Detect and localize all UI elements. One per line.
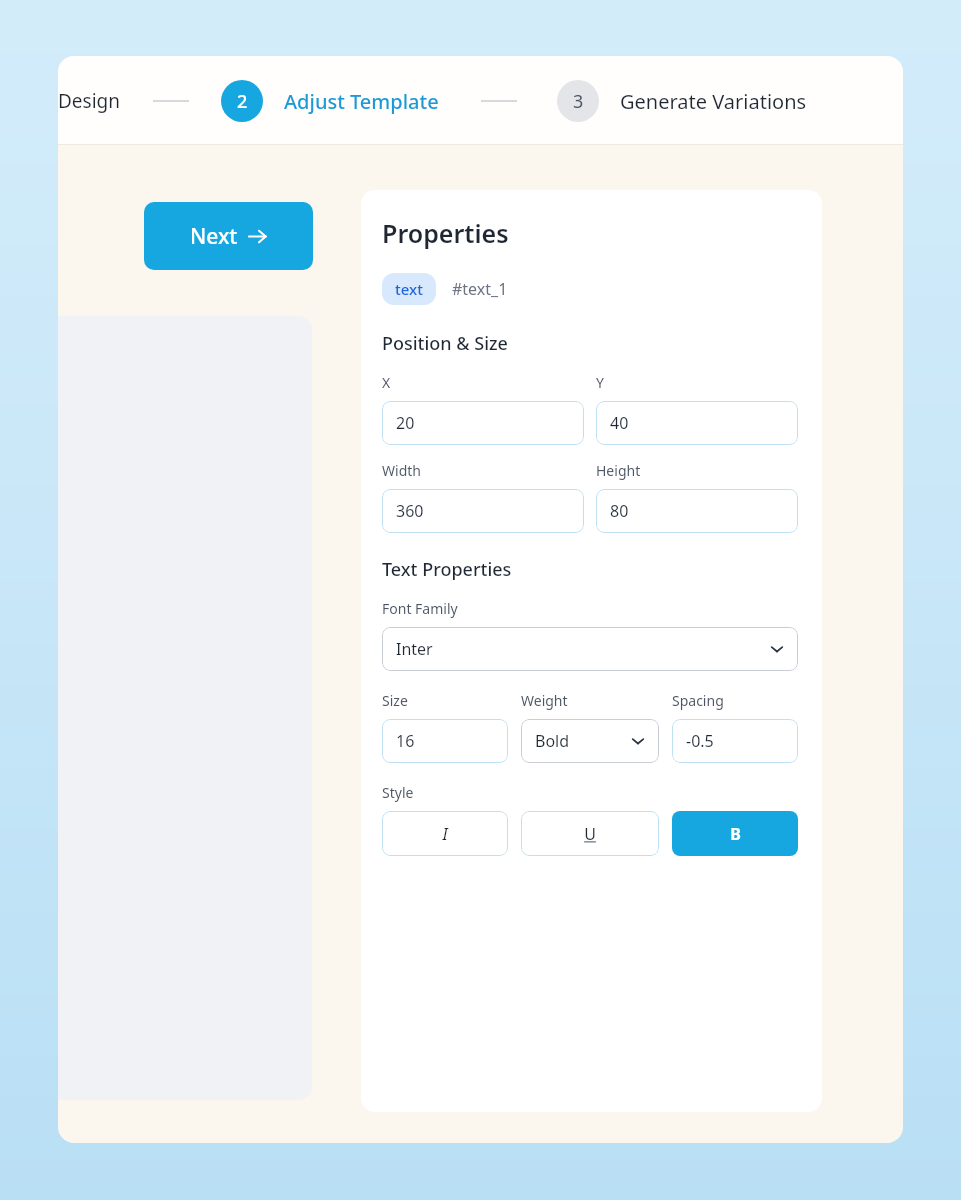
- staticText: Design: [58, 88, 121, 114]
- staticText: 40: [610, 412, 629, 434]
- staticText: Properties: [382, 216, 509, 250]
- staticText: #text_1: [452, 278, 508, 300]
- staticText: 3: [573, 89, 584, 114]
- staticText: Position & Size: [382, 331, 508, 356]
- staticText: 360: [396, 500, 424, 522]
- staticText: 80: [610, 500, 629, 522]
- staticText: Inter: [396, 638, 433, 660]
- button[interactable]: 2: [221, 80, 439, 122]
- staticText: Style: [382, 783, 414, 802]
- button[interactable]: -0.5: [672, 719, 798, 763]
- button[interactable]: 3: [557, 80, 807, 122]
- staticText: Generate Variations: [620, 88, 807, 115]
- staticText: Weight: [521, 691, 568, 710]
- button[interactable]: 80: [596, 489, 798, 533]
- button[interactable]: 16: [382, 719, 508, 763]
- staticText: Size: [382, 691, 408, 710]
- button[interactable]: 360: [382, 489, 584, 533]
- staticText: 2: [237, 89, 248, 114]
- button[interactable]: I: [382, 811, 508, 856]
- button[interactable]: Inter: [382, 627, 798, 671]
- button[interactable]: 40: [596, 401, 798, 445]
- button[interactable]: U: [521, 811, 659, 856]
- staticText: 20: [396, 412, 415, 434]
- staticText: text: [395, 279, 423, 299]
- staticText: Next: [190, 222, 238, 251]
- button[interactable]: Bold: [521, 719, 659, 763]
- staticText: Spacing: [672, 691, 724, 710]
- staticText: 16: [396, 730, 415, 752]
- staticText: I: [442, 823, 448, 845]
- staticText: U: [584, 823, 596, 845]
- staticText: Bold: [535, 730, 570, 752]
- staticText: X: [382, 373, 391, 392]
- staticText: Font Family: [382, 599, 458, 618]
- button[interactable]: 20: [382, 401, 584, 445]
- button[interactable]: B: [672, 811, 798, 856]
- staticText: Text Properties: [382, 557, 512, 582]
- staticText: Width: [382, 461, 421, 480]
- button[interactable]: Next: [144, 202, 313, 270]
- staticText: Height: [596, 461, 641, 480]
- staticText: B: [730, 823, 741, 845]
- staticText: -0.5: [686, 730, 714, 752]
- button[interactable]: text: [382, 273, 436, 305]
- staticText: Y: [596, 373, 604, 392]
- staticText: Adjust Template: [284, 88, 439, 115]
